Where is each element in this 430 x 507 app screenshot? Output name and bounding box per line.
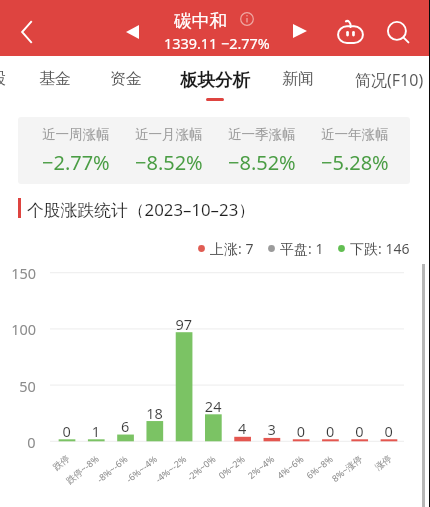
staticText: 平盘: 1 — [280, 239, 324, 258]
button[interactable]: 基金 — [29, 56, 81, 104]
button[interactable]: 新闻 — [272, 56, 324, 104]
staticText: 资金 — [110, 69, 142, 89]
staticText: 近一季涨幅 — [228, 126, 296, 143]
staticText: 个股 — [0, 69, 6, 89]
staticText: 1339.11 −2.77% — [164, 34, 270, 54]
button[interactable]: AI assistant — [328, 9, 372, 53]
button[interactable]: 个股 — [0, 56, 16, 104]
staticText: 近一月涨幅 — [135, 126, 203, 143]
button[interactable]: 简况(F10) — [342, 56, 430, 104]
button[interactable]: 板块分析 — [171, 56, 259, 104]
staticText: 新闻 — [282, 69, 314, 89]
staticText: −8.52% — [135, 149, 203, 176]
staticText: 板块分析 — [180, 69, 250, 91]
staticText: −8.52% — [228, 149, 296, 176]
button[interactable]: Previous stock — [114, 19, 151, 45]
staticText: 上涨: 7 — [210, 239, 254, 258]
staticText: 下跌: 146 — [350, 239, 410, 258]
staticText: 近一周涨幅 — [42, 126, 110, 143]
staticText: 基金 — [39, 69, 71, 89]
staticText: 近一年涨幅 — [321, 126, 389, 143]
button[interactable]: Next stock — [281, 18, 318, 44]
button[interactable]: Search — [377, 11, 421, 55]
button[interactable]: 近一周涨幅 — [18, 117, 410, 184]
staticText: 简况(F10) — [355, 69, 424, 91]
button[interactable]: Back — [4, 10, 48, 54]
button[interactable]: 资金 — [100, 56, 152, 104]
staticText: 个股涨跌统计（2023–10–23） — [27, 198, 256, 218]
staticText: −5.28% — [321, 149, 389, 176]
staticText: −2.77% — [42, 149, 110, 176]
staticText: 碳中和 — [174, 10, 228, 32]
